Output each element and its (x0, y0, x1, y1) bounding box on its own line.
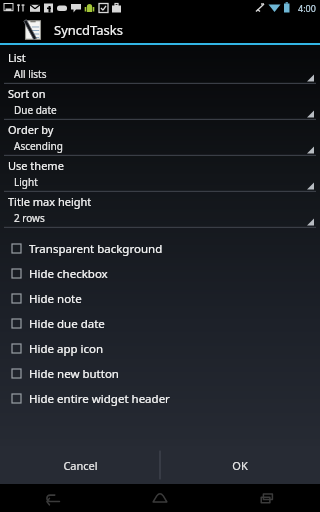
staticText: Title max height (8, 194, 92, 209)
staticText: Hide new button (29, 366, 119, 382)
button[interactable]: Sort on (0, 84, 320, 120)
button[interactable]: Home (106, 484, 213, 512)
staticText: Sort on (8, 86, 46, 101)
staticText: OK (232, 458, 248, 473)
staticText: Due date (14, 103, 57, 117)
staticText: Order by (8, 122, 54, 137)
staticText: Cancel (63, 458, 98, 473)
button[interactable]: Recent apps (213, 484, 320, 512)
staticText: All lists (14, 67, 47, 81)
button[interactable]: Use theme (0, 156, 320, 192)
button[interactable]: Hide app icon (0, 336, 320, 361)
button[interactable]: Back (0, 484, 106, 512)
staticText: Light (14, 175, 38, 189)
button[interactable]: Cancel (0, 446, 160, 484)
button[interactable]: Transparent background (0, 236, 320, 261)
staticText: Hide entire widget header (29, 391, 170, 407)
staticText: Hide app icon (29, 341, 104, 357)
button[interactable]: OK (160, 446, 320, 484)
button[interactable]: Hide checkbox (0, 261, 320, 286)
staticText: Ascending (14, 139, 63, 153)
staticText: List (8, 50, 26, 65)
staticText: Hide due date (29, 316, 105, 332)
button[interactable]: Hide note (0, 286, 320, 311)
button[interactable]: Order by (0, 120, 320, 156)
button[interactable]: Title max height (0, 192, 320, 228)
staticText: Transparent background (29, 241, 163, 257)
staticText: Hide checkbox (29, 266, 108, 282)
button[interactable]: Hide new button (0, 361, 320, 386)
button[interactable]: Hide due date (0, 311, 320, 336)
staticText: Use theme (8, 158, 64, 173)
button[interactable]: Hide entire widget header (0, 386, 320, 411)
staticText: 2 rows (14, 211, 45, 225)
staticText: 4:00 (298, 2, 316, 14)
staticText: Hide note (29, 291, 82, 307)
staticText: SyncdTasks (54, 21, 123, 39)
button[interactable]: List (0, 48, 320, 84)
